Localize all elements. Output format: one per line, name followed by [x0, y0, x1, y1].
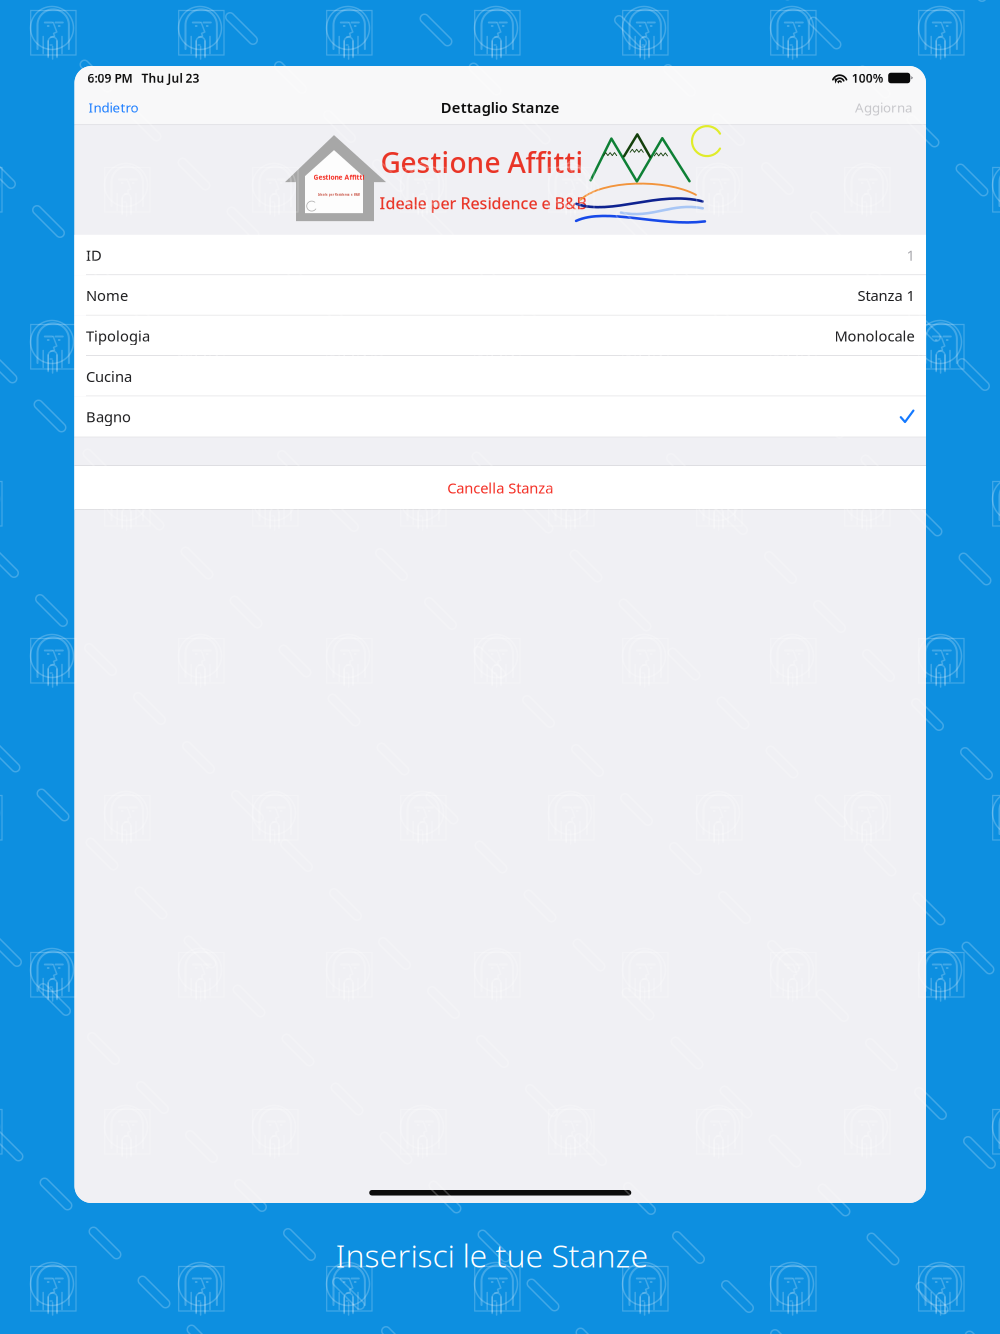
staticText: 6:09 PM	[87, 70, 132, 86]
staticText: 1	[906, 245, 914, 265]
staticText: Dettaglio Stanze	[441, 97, 560, 117]
staticText: Thu Jul 23	[132, 70, 199, 86]
staticText: Gestione Affitti	[380, 143, 583, 181]
button[interactable]: Indietro	[74, 91, 152, 123]
staticText: Gestione Affitti	[313, 173, 364, 182]
button[interactable]: Cucina	[74, 356, 926, 396]
button[interactable]: Aggiorna	[841, 91, 926, 123]
staticText: Nome	[86, 286, 128, 305]
staticText: Cucina	[86, 366, 132, 386]
staticText: Bagno	[86, 407, 131, 426]
staticText: Tipologia	[86, 326, 150, 346]
staticText: Cancella Stanza	[447, 478, 553, 497]
button[interactable]: Bagno	[74, 396, 926, 437]
staticText: ID	[86, 245, 102, 265]
button[interactable]: Nome	[74, 275, 926, 316]
button[interactable]: Cancella Stanza	[74, 466, 926, 509]
staticText: Ideale per Residence e B&B	[318, 193, 360, 196]
staticText: Inserisci le tue Stanze	[335, 1234, 648, 1276]
button[interactable]: ID	[74, 235, 926, 275]
staticText: Aggiorna	[855, 98, 912, 116]
staticText: Ideale per Residence e B&B	[379, 192, 586, 214]
staticText: Stanza 1	[857, 286, 914, 305]
staticText: Indietro	[88, 98, 138, 116]
staticText: 100%	[852, 70, 884, 86]
staticText: Monolocale	[834, 326, 914, 346]
button[interactable]: Tipologia	[74, 316, 926, 356]
